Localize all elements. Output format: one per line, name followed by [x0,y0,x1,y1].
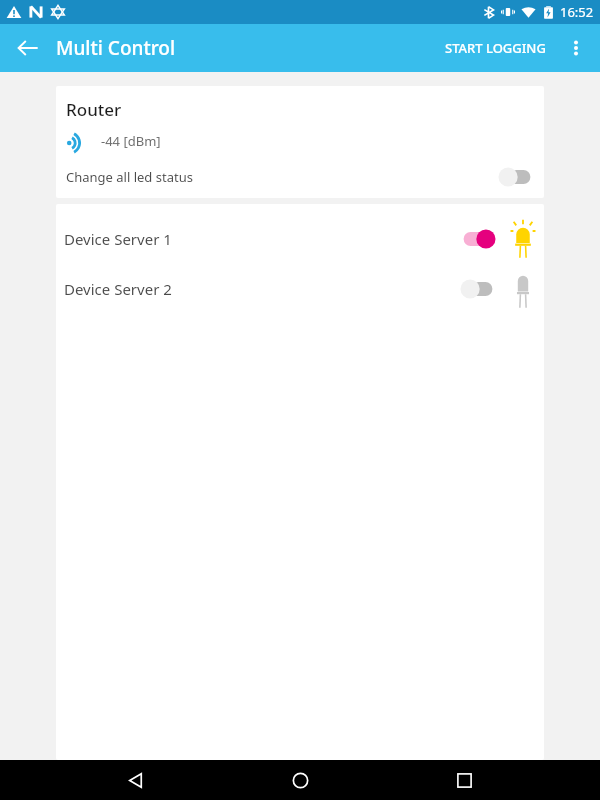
button[interactable]: Back [8,28,48,68]
staticText: Change all led status [66,168,193,186]
button[interactable]: Toggle off [498,165,534,189]
staticText: 16:52 [560,3,594,21]
button[interactable]: Home [272,760,328,800]
staticText: Router [66,98,122,121]
staticText: START LOGGING [445,39,546,57]
other: LED off [510,269,536,309]
button[interactable]: Back [108,760,164,800]
button[interactable]: Recent apps [436,760,492,800]
button[interactable]: Toggle on [460,227,496,251]
button[interactable]: Device Server 1 [56,214,544,264]
button[interactable]: Device Server 2 [56,264,544,314]
button[interactable]: Change all led status [56,161,544,193]
staticText: -44 [dBm] [101,132,161,150]
button[interactable]: More options [556,28,596,68]
staticText: Device Server 1 [64,229,172,249]
other: LED on [510,219,536,259]
button[interactable]: START LOGGING [435,29,556,67]
button[interactable]: Toggle off [460,277,496,301]
staticText: Multi Control [56,35,176,61]
staticText: Device Server 2 [64,279,172,299]
